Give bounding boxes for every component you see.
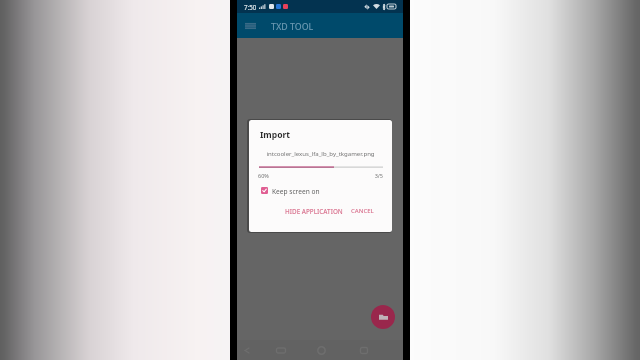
staticText: 7:50 [244, 3, 257, 11]
button[interactable]: Open files [371, 305, 395, 329]
button[interactable]: Menu [241, 13, 259, 38]
staticText: Import [260, 129, 291, 141]
button[interactable]: Home [313, 342, 329, 358]
button[interactable]: Keep screen on [249, 185, 392, 195]
button[interactable]: CANCEL [351, 207, 374, 215]
staticText: 3/5 [249, 172, 383, 179]
staticText: Keep screen on [272, 187, 320, 196]
button[interactable]: HIDE APPLICATION [285, 207, 343, 216]
button[interactable]: Apps [273, 342, 289, 358]
staticText: 60% [258, 172, 269, 179]
button[interactable]: Recents [356, 342, 372, 358]
staticText: intcooler_lexus_lfa_lb_by_tkgamer.png [249, 150, 392, 158]
staticText: TXD TOOL [271, 21, 314, 33]
